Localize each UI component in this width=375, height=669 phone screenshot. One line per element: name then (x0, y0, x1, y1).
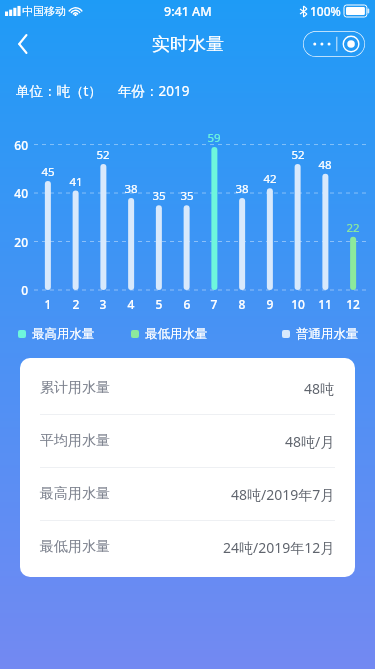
staticText: 中国移动 (22, 4, 66, 18)
button[interactable]: More options (303, 31, 365, 57)
button[interactable]: 普通用水量 (282, 326, 359, 342)
staticText: 最高用水量 (40, 485, 110, 503)
button[interactable]: Back (4, 25, 42, 63)
staticText: 实时水量 (152, 33, 224, 56)
staticText: 10 (282, 296, 314, 312)
staticText: 年份：2019 (118, 82, 190, 100)
staticText: 9 (254, 296, 286, 312)
staticText: 最低用水量 (145, 326, 208, 342)
staticText: 48吨/月 (285, 432, 335, 451)
staticText: 6 (171, 296, 203, 312)
staticText: 35 (143, 188, 175, 204)
button[interactable]: 累计用水量 (20, 362, 355, 414)
staticText: 35 (171, 188, 203, 204)
staticText: 8 (226, 296, 258, 312)
staticText: 42 (254, 171, 286, 187)
staticText: 最低用水量 (40, 538, 110, 556)
staticText: 41 (60, 174, 92, 190)
button[interactable]: 最低用水量 (20, 521, 355, 573)
staticText: 22 (337, 220, 369, 236)
staticText: 48吨/2019年7月 (231, 485, 335, 504)
staticText: 40 (2, 185, 28, 201)
button[interactable]: 最高用水量 (18, 326, 95, 342)
staticText: 最高用水量 (32, 326, 95, 342)
staticText: 45 (32, 164, 64, 180)
staticText: 1 (32, 296, 64, 312)
staticText: 100% (310, 3, 341, 19)
staticText: 4 (115, 296, 147, 312)
staticText: 9:41 AM (164, 3, 212, 20)
staticText: 7 (198, 296, 230, 312)
staticText: 12 (337, 296, 369, 312)
staticText: 59 (198, 130, 230, 146)
staticText: 20 (2, 234, 28, 250)
staticText: 平均用水量 (40, 432, 110, 450)
staticText: 3 (87, 296, 119, 312)
staticText: 52 (282, 147, 314, 163)
staticText: 48吨 (304, 379, 335, 398)
staticText: 累计用水量 (40, 379, 110, 397)
staticText: 单位：吨（t） (16, 82, 102, 100)
staticText: 24吨/2019年12月 (223, 538, 335, 557)
staticText: 60 (2, 137, 28, 153)
button[interactable]: 最低用水量 (131, 326, 208, 342)
staticText: 普通用水量 (296, 326, 359, 342)
staticText: 38 (226, 181, 258, 197)
staticText: 52 (87, 147, 119, 163)
staticText: 48 (309, 157, 341, 173)
staticText: 2 (60, 296, 92, 312)
button[interactable]: 平均用水量 (20, 415, 355, 467)
staticText: 11 (309, 296, 341, 312)
staticText: 0 (2, 282, 28, 298)
staticText: 38 (115, 181, 147, 197)
staticText: 5 (143, 296, 175, 312)
button[interactable]: 最高用水量 (20, 468, 355, 520)
